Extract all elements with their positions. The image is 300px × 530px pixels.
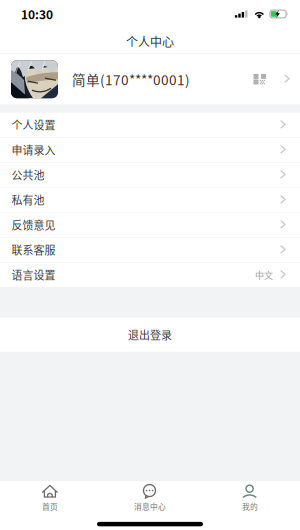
- staticText: 简单(170****0001): [72, 69, 190, 89]
- button[interactable]: 反馈意见: [0, 213, 300, 238]
- staticText: 首页: [42, 501, 58, 512]
- staticText: 消息中心: [134, 501, 166, 512]
- button[interactable]: 联系客服: [0, 238, 300, 263]
- staticText: 我的: [242, 501, 258, 512]
- staticText: 个人中心: [126, 33, 174, 50]
- button[interactable]: 私有池: [0, 188, 300, 213]
- staticText: 申请录入: [11, 142, 55, 158]
- staticText: 中文: [255, 268, 273, 281]
- staticText: 公共池: [11, 167, 44, 183]
- button[interactable]: 我的: [200, 478, 300, 518]
- staticText: 语言设置: [11, 267, 55, 283]
- button[interactable]: 个人设置: [0, 113, 300, 138]
- staticText: 个人设置: [11, 117, 55, 133]
- staticText: 联系客服: [11, 242, 55, 258]
- staticText: 反馈意见: [11, 217, 55, 233]
- button[interactable]: 退出登录: [0, 318, 300, 352]
- staticText: 10:30: [21, 5, 53, 23]
- staticText: 私有池: [11, 192, 44, 208]
- button[interactable]: 简单(170****0001): [0, 54, 300, 105]
- staticText: 退出登录: [128, 327, 172, 343]
- button[interactable]: 公共池: [0, 163, 300, 188]
- button[interactable]: 语言设置: [0, 263, 300, 288]
- button[interactable]: 申请录入: [0, 138, 300, 163]
- button[interactable]: 首页: [0, 478, 100, 518]
- button[interactable]: 消息中心: [100, 478, 200, 518]
